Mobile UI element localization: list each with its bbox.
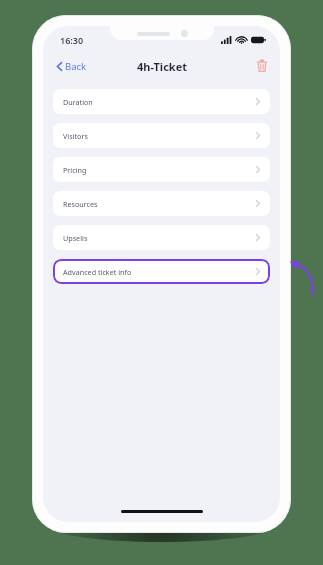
staticText: Back (65, 60, 87, 73)
staticText: 4h-Ticket (137, 59, 187, 74)
staticText: Advanced ticket info (63, 267, 132, 277)
button[interactable]: Delete ticket (253, 56, 271, 76)
staticText: Upsells (63, 233, 88, 243)
staticText: 16:30 (60, 34, 84, 46)
button[interactable]: Back (52, 57, 92, 76)
button[interactable]: Advanced ticket info (53, 259, 270, 284)
staticText: Visitors (63, 131, 88, 141)
staticText: Duration (63, 97, 93, 107)
staticText: Resources (63, 199, 98, 209)
button[interactable]: Resources (53, 191, 270, 216)
button[interactable]: Visitors (53, 123, 270, 148)
button[interactable]: Duration (53, 89, 270, 114)
button[interactable]: Pricing (53, 157, 270, 182)
staticText: Pricing (63, 165, 87, 175)
button[interactable]: Upsells (53, 225, 270, 250)
